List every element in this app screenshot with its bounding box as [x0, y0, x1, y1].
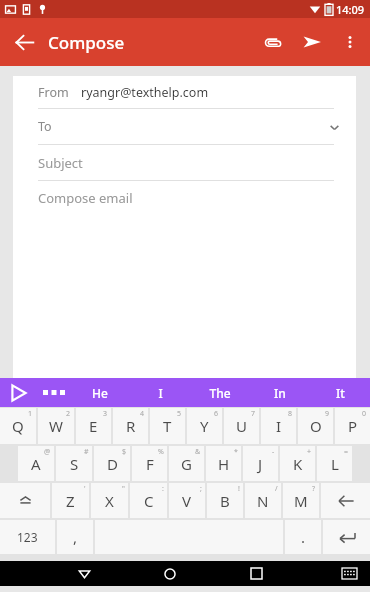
- button[interactable]: V: [169, 483, 205, 518]
- staticText: 1: [28, 409, 33, 419]
- staticText: U: [236, 416, 247, 436]
- button[interactable]: More suggestions: [36, 378, 70, 407]
- staticText: 2: [66, 409, 71, 419]
- staticText: Y: [200, 416, 209, 436]
- button[interactable]: It: [310, 378, 370, 407]
- staticText: 4: [140, 409, 145, 419]
- staticText: X: [105, 491, 114, 511]
- button[interactable]: Y: [187, 408, 222, 444]
- button[interactable]: [0, 483, 50, 518]
- button[interactable]: Send: [292, 22, 332, 62]
- staticText: -: [272, 447, 275, 457]
- button[interactable]: The: [190, 378, 250, 407]
- button[interactable]: To: [13, 109, 356, 144]
- staticText: ": [122, 484, 125, 494]
- button[interactable]: Back: [61, 561, 107, 586]
- staticText: G: [181, 454, 192, 474]
- staticText: It: [336, 385, 345, 401]
- staticText: To: [38, 118, 52, 135]
- button[interactable]: [323, 520, 370, 554]
- staticText: L: [331, 454, 339, 474]
- button[interactable]: X: [91, 483, 128, 518]
- button[interactable]: Back: [0, 18, 48, 66]
- staticText: /: [275, 484, 278, 494]
- button[interactable]: K: [280, 446, 315, 481]
- button[interactable]: P: [335, 408, 370, 444]
- staticText: *: [234, 447, 238, 457]
- staticText: A: [31, 454, 41, 474]
- staticText: F: [146, 454, 154, 474]
- button[interactable]: Switch keyboard: [332, 561, 366, 586]
- staticText: Compose: [48, 31, 125, 54]
- staticText: T: [163, 416, 172, 436]
- staticText: Q: [12, 416, 24, 436]
- button[interactable]: 123: [0, 520, 55, 554]
- button[interactable]: W: [38, 408, 74, 444]
- button[interactable]: Z: [52, 483, 89, 518]
- staticText: I: [276, 416, 282, 436]
- staticText: .: [301, 527, 306, 547]
- staticText: H: [218, 454, 230, 474]
- staticText: Subject: [38, 154, 83, 172]
- staticText: =: [344, 447, 349, 457]
- button[interactable]: Home: [147, 561, 193, 586]
- staticText: K: [293, 454, 303, 474]
- staticText: In: [274, 385, 286, 401]
- button[interactable]: From: [13, 76, 356, 108]
- staticText: ': [84, 484, 86, 494]
- button[interactable]: Play: [0, 378, 36, 407]
- staticText: S: [70, 454, 79, 474]
- button[interactable]: G: [169, 446, 204, 481]
- staticText: 123: [17, 529, 38, 545]
- staticText: Compose email: [38, 189, 133, 207]
- staticText: I: [158, 385, 163, 401]
- button[interactable]: M: [283, 483, 319, 518]
- button[interactable]: Attach file: [252, 22, 292, 62]
- staticText: J: [258, 454, 263, 474]
- button[interactable]: H: [206, 446, 241, 481]
- button[interactable]: N: [245, 483, 281, 518]
- button[interactable]: O: [298, 408, 333, 444]
- button[interactable]: More options: [332, 24, 368, 60]
- staticText: From: [38, 84, 69, 101]
- button[interactable]: F: [132, 446, 167, 481]
- button[interactable]: He: [70, 378, 130, 407]
- button[interactable]: .: [285, 520, 321, 554]
- staticText: #: [84, 447, 89, 457]
- staticText: C: [144, 491, 154, 511]
- button[interactable]: Recent apps: [233, 561, 279, 586]
- button[interactable]: ,: [57, 520, 93, 554]
- staticText: 14:09: [336, 2, 365, 17]
- button[interactable]: In: [250, 378, 310, 407]
- button[interactable]: Expand recipients: [320, 113, 348, 141]
- staticText: 7: [251, 409, 256, 419]
- button[interactable]: U: [224, 408, 259, 444]
- button[interactable]: C: [130, 483, 167, 518]
- button[interactable]: J: [243, 446, 278, 481]
- staticText: ,: [73, 527, 78, 547]
- staticText: The: [209, 385, 231, 401]
- button[interactable]: Q: [0, 408, 36, 444]
- button[interactable]: E: [76, 408, 111, 444]
- button[interactable]: [321, 483, 370, 518]
- button[interactable]: L: [317, 446, 352, 481]
- button[interactable]: T: [150, 408, 185, 444]
- staticText: 5: [177, 409, 182, 419]
- button[interactable]: I: [130, 378, 190, 407]
- staticText: 6: [214, 409, 219, 419]
- button[interactable]: Compose email: [13, 181, 356, 215]
- button[interactable]: B: [207, 483, 243, 518]
- button[interactable]: S: [56, 446, 92, 481]
- button[interactable]: I: [261, 408, 296, 444]
- staticText: @: [44, 447, 51, 457]
- staticText: 9: [325, 409, 330, 419]
- staticText: ?: [312, 484, 316, 494]
- staticText: +: [307, 447, 312, 457]
- button[interactable]: A: [18, 446, 54, 481]
- staticText: B: [220, 491, 230, 511]
- staticText: He: [92, 385, 108, 401]
- button[interactable]: D: [94, 446, 130, 481]
- button[interactable]: R: [113, 408, 148, 444]
- button[interactable]: Subject: [13, 145, 356, 180]
